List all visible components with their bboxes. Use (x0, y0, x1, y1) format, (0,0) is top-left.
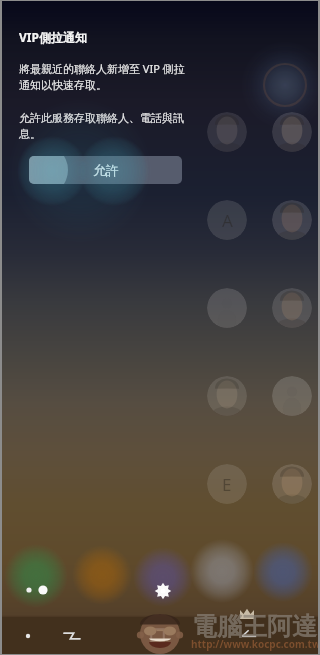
button[interactable]: 允許 (29, 156, 182, 184)
button[interactable]: Contact (207, 376, 247, 416)
staticText: 電腦王阿達 (192, 611, 317, 642)
button[interactable]: Contact (207, 112, 247, 152)
button[interactable]: Contact (272, 200, 312, 240)
button[interactable]: Contact (272, 288, 312, 328)
staticText: A (222, 209, 233, 232)
staticText: http://www.kocpc.com.tw (191, 637, 318, 651)
button[interactable]: Contact (272, 464, 312, 504)
button[interactable]: Recents (62, 626, 82, 646)
button[interactable]: Assistant (22, 630, 34, 642)
button[interactable]: Contact (207, 200, 247, 240)
staticText: 允許此服務存取聯絡人、電話與訊 息。 (19, 111, 184, 142)
staticText: E (222, 473, 232, 496)
button[interactable]: Contact (272, 112, 312, 152)
button[interactable]: Contact (207, 288, 247, 328)
staticText: 允許 (93, 162, 119, 178)
staticText: 將最親近的聯絡人新增至 VIP 側拉 通知以快速存取。 (19, 61, 185, 93)
button[interactable]: Home (149, 627, 166, 644)
staticText: VIP側拉通知 (19, 29, 87, 45)
button[interactable]: Settings (154, 582, 172, 600)
button[interactable]: Contact (272, 376, 312, 416)
button[interactable]: Contact (207, 464, 247, 504)
button[interactable]: Back (240, 627, 258, 645)
